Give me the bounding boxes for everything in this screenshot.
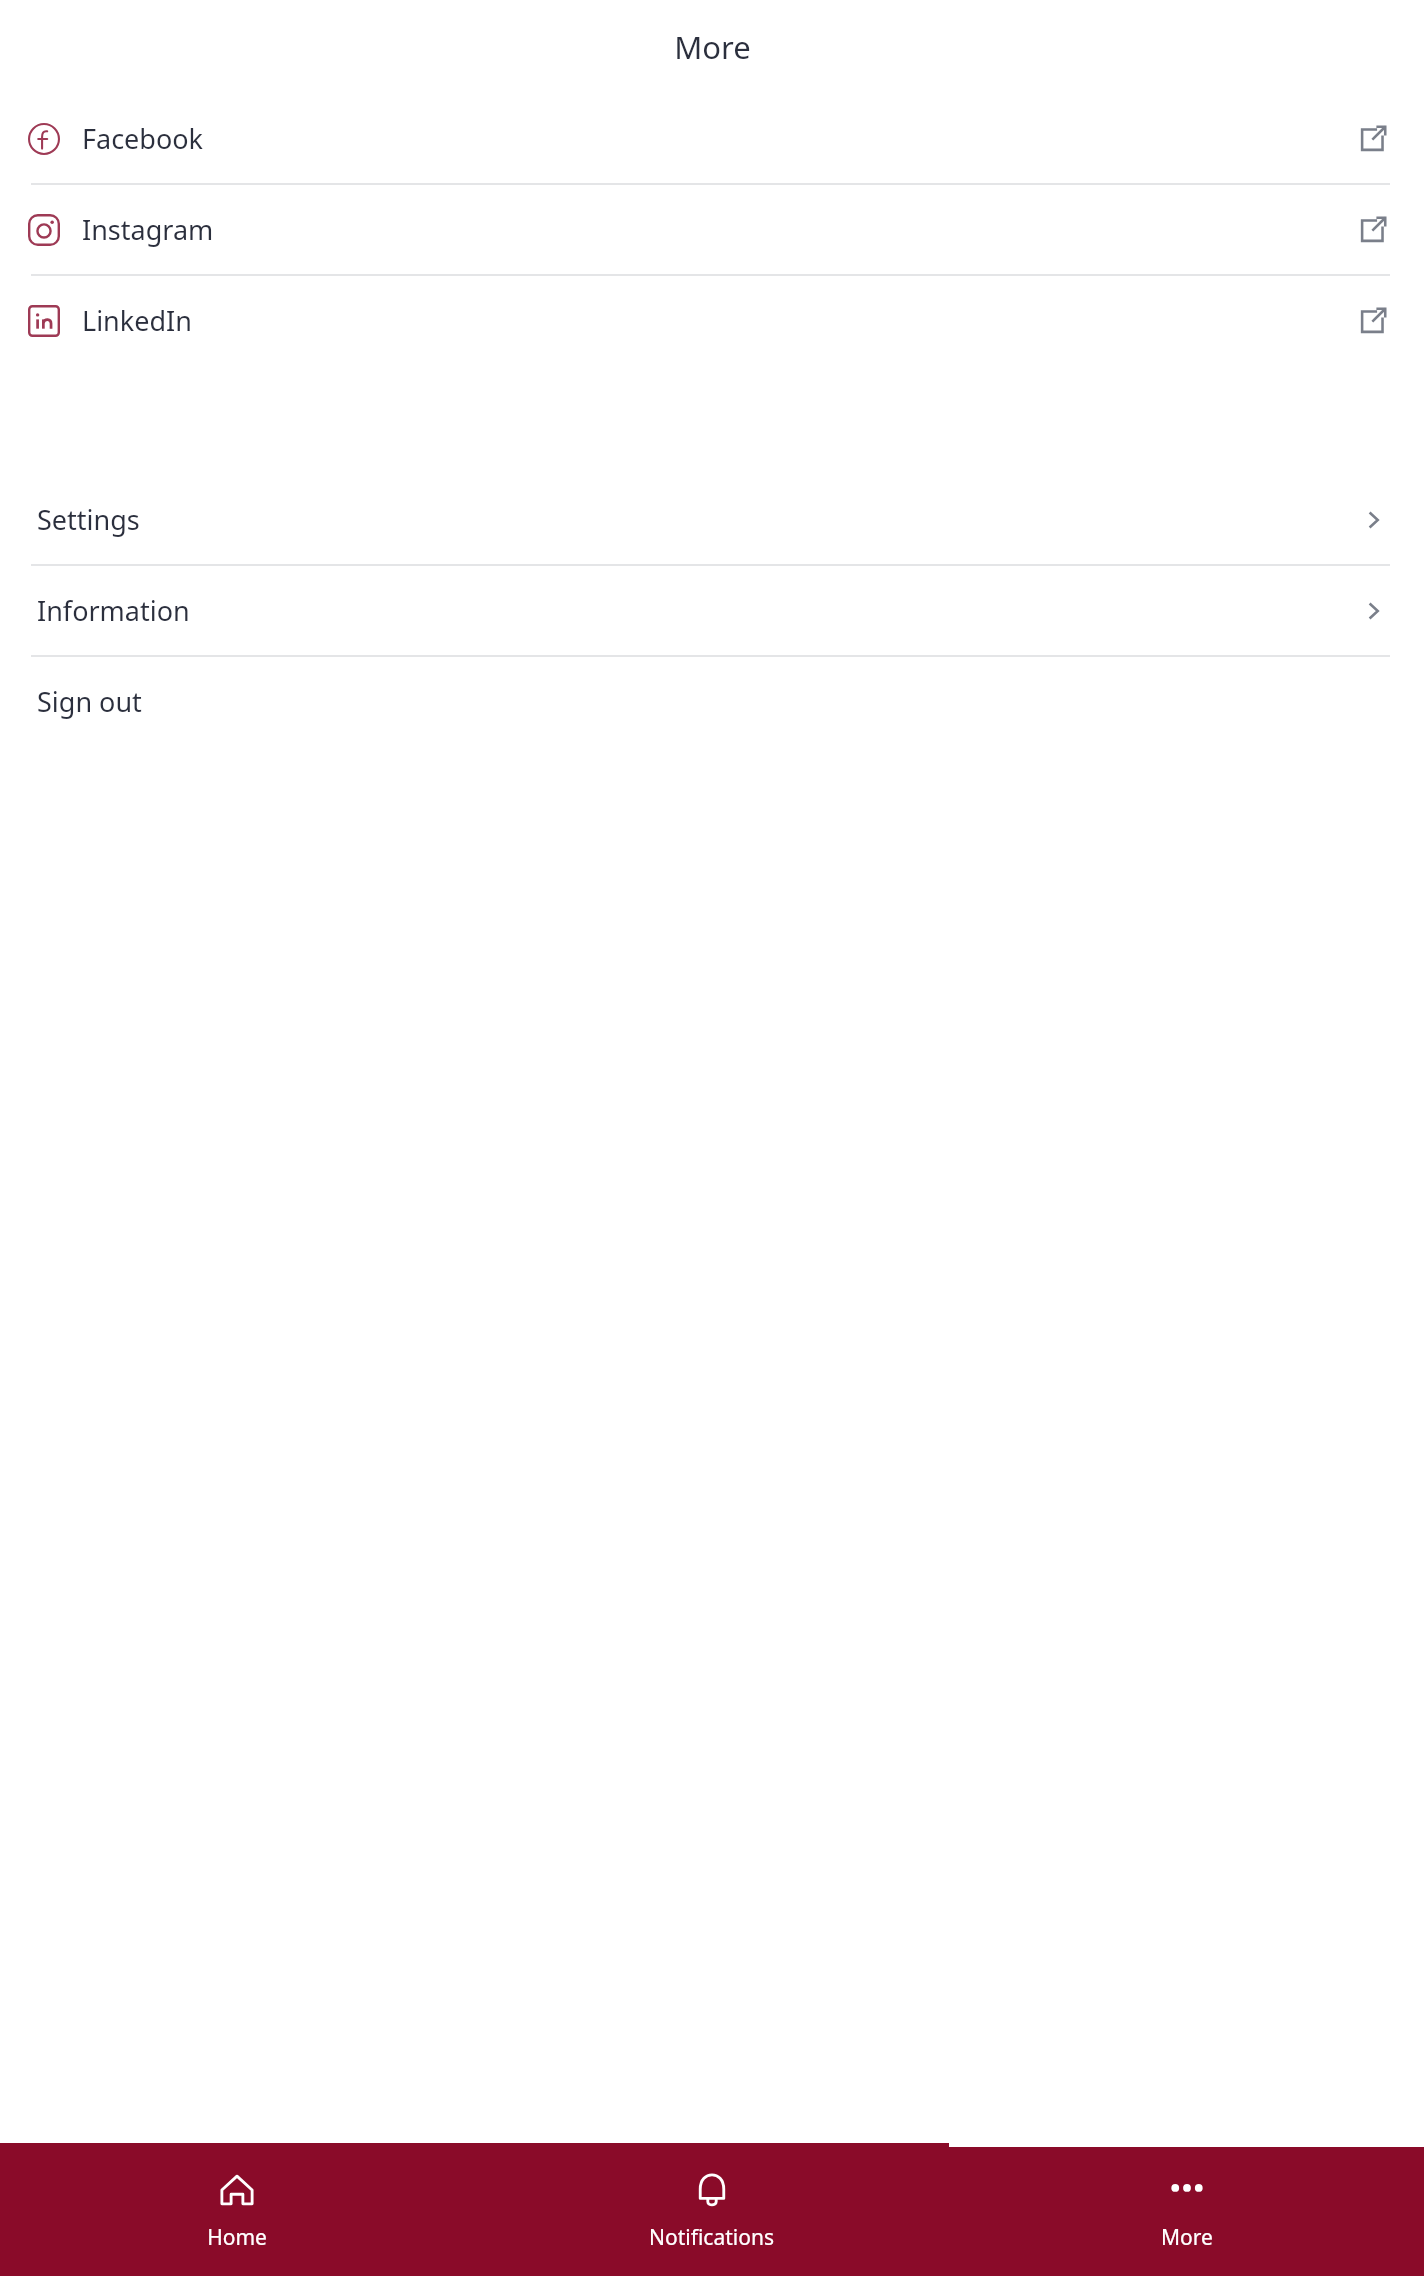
- staticText: Home: [207, 2223, 267, 2252]
- button[interactable]: Information: [0, 566, 1424, 655]
- staticText: Facebook: [82, 120, 204, 157]
- button[interactable]: LinkedIn: [0, 276, 1424, 365]
- staticText: Settings: [37, 501, 140, 538]
- staticText: More: [674, 26, 751, 68]
- button[interactable]: Home: [0, 2143, 474, 2276]
- button[interactable]: Sign out: [0, 657, 1424, 746]
- button[interactable]: Notifications: [474, 2143, 949, 2276]
- staticText: Sign out: [37, 683, 142, 720]
- staticText: Notifications: [649, 2223, 774, 2252]
- button[interactable]: Facebook: [0, 94, 1424, 183]
- staticText: Instagram: [82, 211, 214, 248]
- button[interactable]: More: [949, 2143, 1424, 2276]
- staticText: More: [1161, 2223, 1213, 2252]
- staticText: Information: [37, 592, 190, 629]
- staticText: LinkedIn: [82, 302, 192, 339]
- button[interactable]: Settings: [0, 475, 1424, 564]
- button[interactable]: Instagram: [0, 185, 1424, 274]
